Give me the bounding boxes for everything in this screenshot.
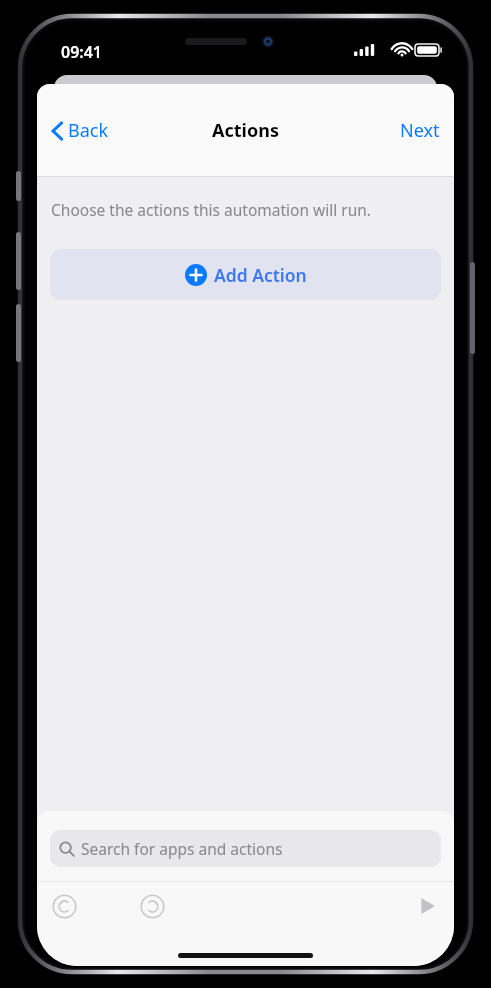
button[interactable]: Undo (43, 885, 85, 927)
staticText: Actions (212, 118, 279, 143)
button[interactable]: Search for apps and actions (50, 830, 441, 867)
button[interactable]: Play (406, 885, 448, 927)
button[interactable]: Redo (131, 885, 173, 927)
staticText: Choose the actions this automation will … (51, 199, 371, 220)
staticText: 09:41 (61, 41, 103, 63)
button[interactable]: Back (45, 110, 115, 151)
button[interactable]: Next (394, 110, 446, 151)
button[interactable]: Add Action (50, 249, 441, 300)
staticText: Add Action (214, 263, 307, 287)
staticText: Back (68, 118, 109, 143)
staticText: Search for apps and actions (81, 838, 283, 859)
staticText: Next (400, 118, 440, 143)
